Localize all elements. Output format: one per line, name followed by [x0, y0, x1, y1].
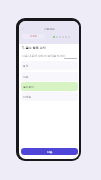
button[interactable]: Back	[21, 27, 25, 31]
staticText: 다음 내용에 대하여 동의를 하여야	[22, 54, 66, 58]
staticText: 마케팅	[23, 95, 32, 98]
button[interactable]: 마케팅	[21, 92, 78, 101]
button[interactable]: 필수동의	[21, 82, 78, 91]
button[interactable]: 다음	[21, 148, 78, 155]
staticText: 약관	[23, 75, 29, 78]
staticText: 이용약관	[44, 27, 55, 30]
button[interactable]: 약관	[21, 72, 78, 81]
staticText: 진행중	[30, 35, 38, 38]
staticText: 필수동의	[23, 85, 34, 88]
staticText: 1. 필수 항목 고지	[22, 46, 46, 50]
button[interactable]: 진행중	[22, 34, 45, 39]
staticText: 동의	[23, 64, 29, 67]
staticText: 다음	[47, 150, 53, 154]
button[interactable]: 동의	[21, 61, 78, 70]
